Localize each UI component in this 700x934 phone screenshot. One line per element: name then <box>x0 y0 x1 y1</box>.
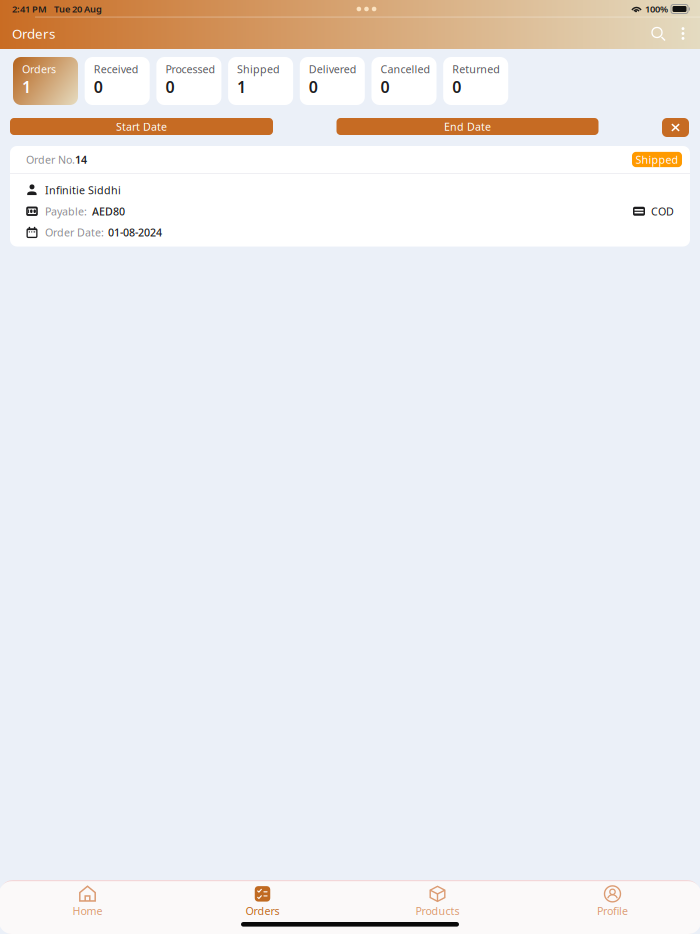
staticText: Tue 20 Aug <box>54 3 102 15</box>
staticText: Shipped <box>237 62 280 76</box>
staticText: 1 <box>237 76 246 97</box>
staticText: Home <box>72 904 102 918</box>
button[interactable]: Products <box>350 885 525 918</box>
staticText: Order No. <box>26 152 75 167</box>
staticText: COD <box>651 204 674 218</box>
staticText: Profile <box>597 904 628 918</box>
button[interactable]: Order No. <box>10 146 690 246</box>
staticText: Processed <box>165 62 215 76</box>
button[interactable]: Received <box>85 57 150 105</box>
staticText: AED80 <box>92 204 125 218</box>
button[interactable]: Processed <box>156 57 221 105</box>
button[interactable]: Start Date <box>10 118 273 135</box>
staticText: 100% <box>645 3 668 15</box>
button[interactable]: Search <box>645 20 671 46</box>
button[interactable]: Delivered <box>300 57 365 105</box>
staticText: 0 <box>94 76 103 97</box>
staticText: 0 <box>165 76 174 97</box>
staticText: 0 <box>380 76 389 97</box>
button[interactable]: Home <box>0 885 175 918</box>
staticText: Cancelled <box>380 62 430 76</box>
staticText: 0 <box>452 76 461 97</box>
staticText: Delivered <box>309 62 357 76</box>
button[interactable]: End Date <box>336 118 598 135</box>
button[interactable]: More options <box>671 20 695 46</box>
staticText: 2:41 PM <box>12 3 47 15</box>
staticText: 1 <box>22 76 31 97</box>
staticText: Orders <box>22 62 56 76</box>
staticText: Shipped <box>635 152 678 167</box>
staticText: Order Date: <box>45 225 104 239</box>
staticText: 01-08-2024 <box>108 225 162 239</box>
staticText: Infinitie Siddhi <box>45 183 121 197</box>
staticText: 0 <box>309 76 318 97</box>
button[interactable]: Shipped <box>228 57 293 105</box>
button[interactable]: Orders <box>13 57 78 105</box>
button[interactable]: Orders <box>175 885 350 918</box>
staticText: Returned <box>452 62 500 76</box>
staticText: Orders <box>245 904 279 918</box>
button[interactable]: Cancelled <box>371 57 436 105</box>
button[interactable]: Returned <box>443 57 508 105</box>
staticText: Products <box>415 904 459 918</box>
staticText: Received <box>94 62 139 76</box>
staticText: Payable: <box>45 204 87 218</box>
button[interactable]: Profile <box>525 885 700 918</box>
staticText: Start Date <box>116 119 167 134</box>
staticText: Orders <box>12 25 55 42</box>
staticText: 14 <box>75 152 87 167</box>
staticText: End Date <box>444 119 491 134</box>
button[interactable]: Clear filters <box>662 118 689 140</box>
